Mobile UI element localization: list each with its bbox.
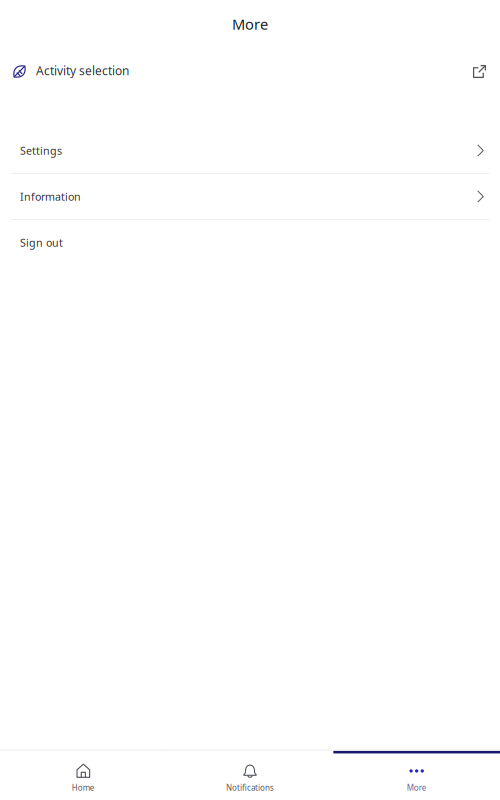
staticText: Activity selection <box>36 62 129 78</box>
button[interactable]: Activity selection <box>0 54 129 87</box>
button[interactable]: Home <box>0 752 167 800</box>
staticText: Settings <box>20 143 62 158</box>
button[interactable]: Settings <box>0 128 500 173</box>
button[interactable]: Open in new window <box>473 55 500 86</box>
staticText: More <box>232 14 268 34</box>
staticText: Sign out <box>20 235 63 250</box>
button[interactable]: More <box>333 752 500 800</box>
staticText: Home <box>72 782 95 793</box>
button[interactable]: Sign out <box>0 220 500 265</box>
staticText: Information <box>20 189 81 204</box>
button[interactable]: Information <box>0 174 500 219</box>
staticText: More <box>407 782 427 793</box>
button[interactable]: Notifications <box>167 752 333 800</box>
staticText: Notifications <box>226 782 274 793</box>
